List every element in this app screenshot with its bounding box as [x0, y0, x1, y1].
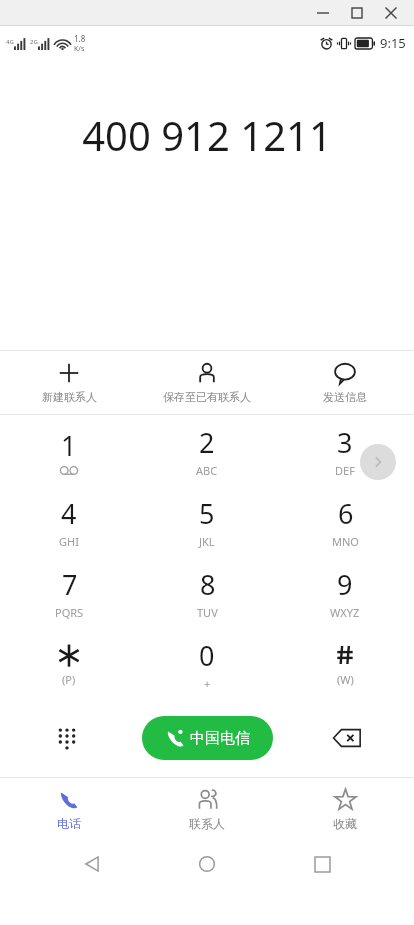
button[interactable]: 联系人 — [138, 788, 276, 831]
staticText: 联系人 — [189, 816, 225, 831]
staticText: (W) — [337, 672, 354, 687]
button[interactable]: Expand — [360, 444, 396, 480]
staticText: 收藏 — [333, 816, 357, 831]
button[interactable]: (W) — [276, 628, 414, 699]
button[interactable]: Back — [70, 842, 114, 886]
staticText: JKL — [199, 534, 215, 549]
staticText: 中国电信 — [190, 729, 250, 748]
staticText: 1 — [61, 427, 77, 464]
staticText: TUV — [197, 605, 218, 620]
staticText: PQRS — [55, 605, 84, 620]
staticText: + — [204, 676, 211, 691]
button[interactable]: (P) — [0, 628, 138, 699]
button[interactable]: 新建联系人 — [0, 358, 138, 408]
button[interactable]: 4 — [0, 486, 138, 557]
button[interactable]: 保存至已有联系人 — [138, 358, 276, 408]
staticText: 9 — [337, 566, 353, 603]
button[interactable]: Home — [185, 842, 229, 886]
button[interactable]: 3 — [276, 415, 414, 486]
button[interactable]: 收藏 — [276, 788, 414, 831]
button[interactable]: 2 — [138, 415, 276, 486]
button[interactable]: 6 — [276, 486, 414, 557]
button[interactable]: Recents — [300, 842, 344, 886]
button[interactable]: 5 — [138, 486, 276, 557]
button[interactable]: 9 — [276, 557, 414, 628]
staticText: 6 — [338, 495, 354, 532]
button[interactable]: Backspace — [325, 716, 369, 760]
staticText: GHI — [59, 534, 79, 549]
button[interactable]: Dialpad — [45, 716, 89, 760]
staticText: 9:15 — [380, 34, 406, 52]
button[interactable]: 8 — [138, 557, 276, 628]
staticText: 8 — [200, 566, 216, 603]
staticText: 2G — [30, 38, 38, 46]
staticText: 5 — [199, 495, 215, 532]
staticText: 4 — [61, 495, 77, 532]
staticText: 4G — [6, 38, 14, 46]
staticText: 3 — [337, 424, 353, 461]
staticText: 发送信息 — [323, 390, 367, 404]
staticText: WXYZ — [330, 605, 360, 620]
button[interactable]: 发送信息 — [276, 358, 414, 408]
staticText: 保存至已有联系人 — [163, 390, 251, 404]
staticText: 1.8 — [74, 33, 86, 44]
staticText: 新建联系人 — [42, 390, 97, 404]
staticText: 2 — [199, 424, 215, 461]
staticText: 电话 — [57, 816, 81, 831]
staticText: (P) — [62, 672, 76, 687]
staticText: 400 912 1211 — [82, 108, 332, 162]
staticText: DEF — [335, 463, 355, 478]
button[interactable]: 1 — [0, 415, 138, 486]
button[interactable]: 0 — [138, 628, 276, 699]
staticText: MNO — [332, 534, 359, 549]
button[interactable]: 中国电信 — [142, 716, 273, 760]
staticText: 0 — [199, 637, 215, 674]
staticText: 7 — [62, 566, 78, 603]
button[interactable]: 电话 — [0, 788, 138, 831]
button[interactable]: 7 — [0, 557, 138, 628]
staticText: K/s — [74, 44, 85, 54]
staticText: ABC — [196, 463, 218, 478]
